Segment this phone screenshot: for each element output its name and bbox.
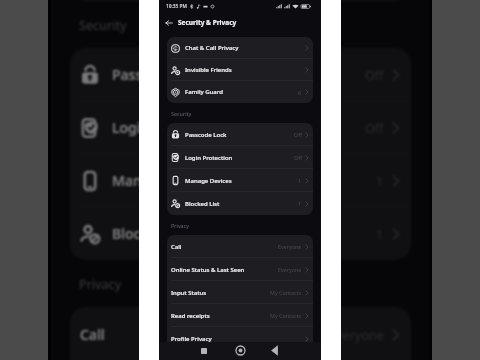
staticText: Login Protection bbox=[185, 154, 233, 162]
staticText: Family Guard bbox=[185, 88, 223, 96]
staticText: Blocked List bbox=[112, 224, 193, 243]
button[interactable]: Call bbox=[167, 235, 313, 258]
button[interactable]: Profile Privacy bbox=[167, 327, 313, 350]
staticText: Off bbox=[294, 154, 302, 161]
staticText: My Contacts bbox=[270, 312, 302, 319]
button[interactable]: Passcode Lock bbox=[167, 123, 313, 146]
button[interactable]: Read receipts bbox=[167, 304, 313, 327]
staticText: Passcode Lock bbox=[112, 65, 209, 84]
staticText: Profile Privacy bbox=[171, 335, 212, 343]
staticText: 1 bbox=[376, 172, 384, 189]
button[interactable]: Manage Devices bbox=[167, 169, 313, 192]
button[interactable]: Login Protection bbox=[70, 101, 411, 154]
button[interactable]: Blocked List bbox=[70, 207, 411, 260]
staticText: Everyone bbox=[329, 326, 384, 343]
staticText: 10:35 PM bbox=[166, 3, 187, 10]
staticText: Input Status bbox=[171, 289, 207, 297]
staticText: Security bbox=[171, 110, 192, 117]
button[interactable]: Blocked List bbox=[167, 192, 313, 215]
button[interactable]: Login Protection bbox=[167, 146, 313, 169]
staticText: Blocked List bbox=[185, 200, 220, 208]
staticText: Invisible Friends bbox=[185, 66, 232, 74]
button[interactable]: Online Status & Last Seen bbox=[167, 258, 313, 281]
staticText: Security bbox=[79, 16, 127, 33]
staticText: Manage Devices bbox=[112, 171, 222, 190]
button[interactable]: Chat & Call Privacy bbox=[167, 37, 313, 59]
staticText: Call bbox=[171, 243, 182, 251]
button[interactable]: Recent apps bbox=[197, 344, 210, 357]
staticText: 1 bbox=[298, 177, 302, 184]
button[interactable]: Invisible Friends bbox=[167, 59, 313, 81]
button[interactable]: Manage Devices bbox=[70, 154, 411, 207]
button[interactable]: Home bbox=[234, 344, 247, 357]
staticText: My Contacts bbox=[270, 289, 302, 296]
staticText: Manage Devices bbox=[185, 177, 232, 185]
staticText: 6 bbox=[298, 89, 302, 96]
button[interactable]: Call bbox=[70, 307, 411, 360]
staticText: Login Protection bbox=[112, 118, 223, 137]
button[interactable]: Back bbox=[268, 344, 281, 357]
staticText: Privacy bbox=[79, 275, 122, 292]
staticText: Everyone bbox=[278, 266, 302, 273]
staticText: Off bbox=[294, 131, 302, 138]
staticText: Security & Privacy bbox=[178, 18, 237, 27]
staticText: Read receipts bbox=[171, 312, 210, 320]
staticText: Chat & Call Privacy bbox=[185, 44, 239, 52]
staticText: Everyone bbox=[278, 243, 302, 250]
staticText: Off bbox=[365, 119, 384, 136]
staticText: Call bbox=[80, 325, 105, 344]
button[interactable]: Family Guard bbox=[167, 81, 313, 103]
staticText: Off bbox=[365, 66, 384, 83]
button[interactable]: Input Status bbox=[167, 281, 313, 304]
staticText: Online Status & Last Seen bbox=[171, 266, 245, 274]
button[interactable]: Passcode Lock bbox=[70, 48, 411, 101]
staticText: 1 bbox=[298, 200, 302, 207]
staticText: 1 bbox=[376, 225, 384, 242]
staticText: Passcode Lock bbox=[185, 131, 227, 139]
button[interactable]: Family Guard bbox=[70, 0, 411, 1]
staticText: Privacy bbox=[171, 222, 189, 229]
button[interactable]: Navigate up bbox=[163, 17, 174, 28]
